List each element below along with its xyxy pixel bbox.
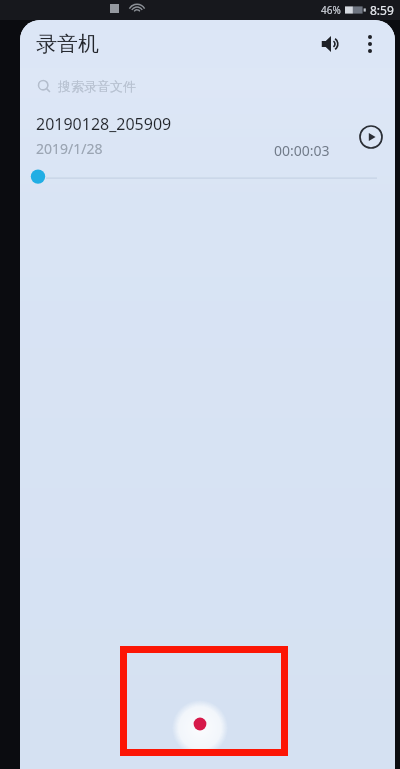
button[interactable]: Speaker	[311, 24, 351, 64]
staticText: 录音机	[36, 31, 99, 57]
staticText: 00:00:03	[274, 141, 330, 160]
staticText: 20190128_205909	[36, 113, 172, 135]
button[interactable]: 20190128_205909	[20, 104, 395, 192]
staticText: 2019/1/28	[36, 139, 103, 158]
staticText: 8:59	[370, 2, 394, 18]
button[interactable]: More options	[351, 25, 389, 63]
staticText: 46%	[321, 3, 341, 17]
button[interactable]: Record	[172, 700, 228, 756]
staticText: 搜索录音文件	[58, 78, 136, 94]
button[interactable]: Play	[354, 120, 388, 154]
button[interactable]: 搜索录音文件	[20, 68, 395, 104]
